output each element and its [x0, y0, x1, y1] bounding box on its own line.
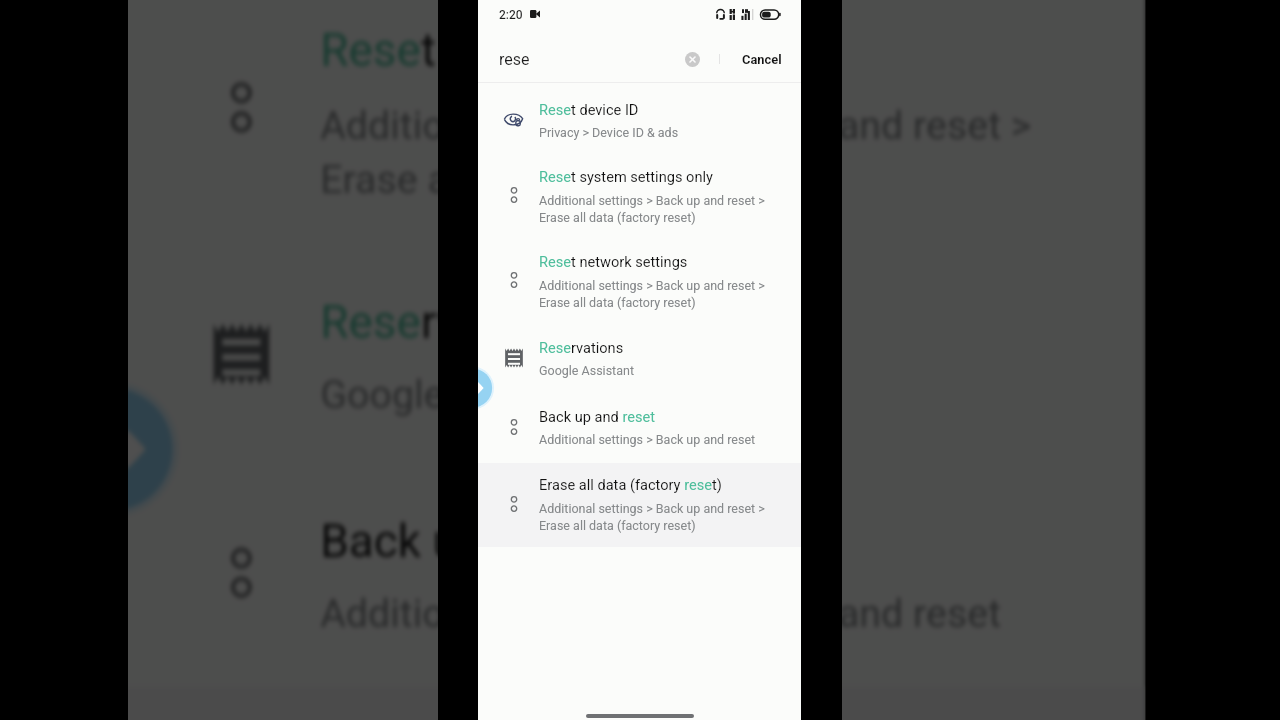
button[interactable]: Clear search — [685, 52, 700, 67]
staticText: Erase all data (factory reset) — [539, 476, 722, 493]
staticText: Additional settings > Back up and reset — [539, 432, 756, 447]
staticText: Reservations — [320, 294, 588, 348]
staticText: Reset system settings only — [539, 168, 713, 185]
button[interactable]: Back up and reset — [128, 465, 1145, 687]
button[interactable]: Reservations — [128, 237, 1145, 465]
staticText: Privacy > Device ID & ads — [539, 125, 679, 140]
button[interactable]: Cancel — [721, 40, 801, 79]
staticText: Additional settings > Back up and reset … — [539, 278, 765, 310]
button[interactable]: Erase all data (factory reset) — [478, 463, 801, 547]
staticText: Reservations — [539, 339, 624, 356]
staticText: 2:20 — [499, 8, 523, 22]
staticText: Additional settings > Back up and reset … — [320, 101, 1032, 202]
button[interactable]: Reset network settings — [478, 237, 801, 321]
staticText: Google Assistant — [539, 363, 634, 378]
staticText: Reset network settings — [539, 253, 688, 270]
staticText: Additional settings > Back up and reset … — [539, 501, 765, 533]
button[interactable]: Reset network settings — [128, 0, 1145, 237]
button[interactable]: Reservations — [478, 321, 801, 393]
staticText: Reset network settings — [320, 22, 789, 76]
button[interactable]: Erase all data (factory reset) — [128, 687, 1145, 720]
staticText: Cancel — [742, 52, 782, 67]
button[interactable]: Reset system settings only — [478, 153, 801, 237]
staticText: Additional settings > Back up and reset … — [539, 193, 765, 225]
staticText: Back up and reset — [320, 513, 686, 566]
button[interactable]: Back up and reset — [478, 393, 801, 463]
staticText: Back up and reset — [539, 408, 655, 425]
staticText: Additional settings > Back up and reset — [320, 589, 1004, 636]
staticText: Google Assistant — [320, 370, 619, 418]
staticText: Reset device ID — [539, 101, 639, 118]
button[interactable]: Reset device ID — [478, 83, 801, 153]
staticText: rese — [499, 50, 530, 69]
